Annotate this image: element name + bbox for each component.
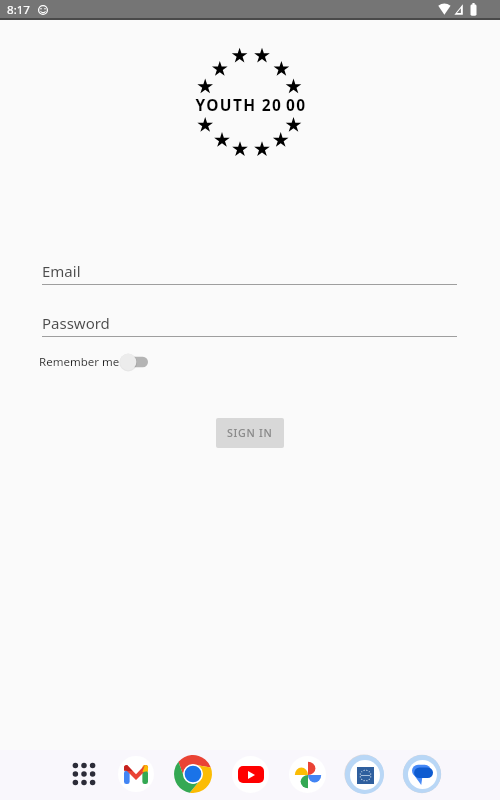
button[interactable]: Messages <box>402 754 442 794</box>
button[interactable]: Remember me <box>39 349 152 375</box>
button[interactable]: Password <box>40 302 457 334</box>
staticText: 8:17 <box>7 2 31 18</box>
staticText: Password <box>42 313 110 333</box>
staticText: SIGN IN <box>227 426 273 441</box>
button[interactable]: SIGN IN <box>216 418 284 448</box>
other: Remember me toggle <box>120 351 152 373</box>
staticText: Remember me <box>39 354 120 370</box>
button[interactable]: All apps <box>64 754 104 794</box>
button[interactable]: Google Photos <box>289 756 326 793</box>
button[interactable]: YouTube <box>232 756 269 793</box>
staticText: Email <box>42 261 81 281</box>
button[interactable]: Chrome <box>174 755 212 793</box>
button[interactable]: Gmail <box>118 756 154 792</box>
button[interactable]: Email <box>40 250 457 282</box>
button[interactable]: Youth 2000 <box>344 754 384 794</box>
staticText: YOUTH 20 00 <box>195 94 307 115</box>
